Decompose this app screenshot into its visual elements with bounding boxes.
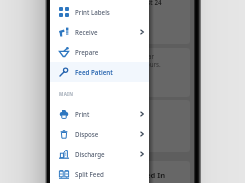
- staticText: MAIN: [59, 91, 74, 97]
- staticText: Feed Patient: [75, 68, 113, 76]
- staticText: st 24: [147, 0, 162, 6]
- staticText: Dispose: [75, 130, 99, 138]
- staticText: ed In: [146, 170, 166, 180]
- button[interactable]: Split Feed: [50, 164, 149, 183]
- staticText: Split Feed: [75, 170, 104, 178]
- button[interactable]: Receive: [50, 22, 149, 42]
- staticText: ours.: [146, 60, 161, 68]
- button[interactable]: Dispose: [50, 124, 149, 144]
- staticText: Discharge: [75, 150, 105, 158]
- button[interactable]: Discharge: [50, 144, 149, 164]
- staticText: Print Labels: [75, 8, 110, 16]
- button[interactable]: Print Labels: [50, 2, 149, 22]
- staticText: Receive: [75, 28, 98, 36]
- button[interactable]: Feed Patient: [50, 62, 149, 82]
- button[interactable]: Prepare: [50, 42, 149, 62]
- button[interactable]: Print: [50, 104, 149, 124]
- staticText: ar: [148, 52, 155, 60]
- staticText: Print: [75, 110, 90, 118]
- staticText: Prepare: [75, 48, 99, 56]
